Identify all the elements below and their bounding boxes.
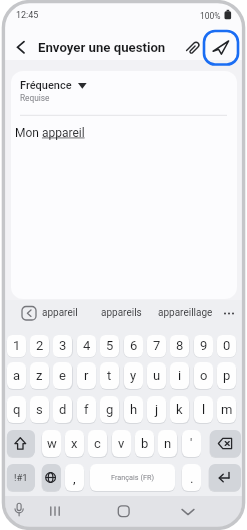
staticText: 4 (83, 338, 91, 353)
button[interactable]: d (53, 396, 72, 423)
button[interactable] (182, 36, 205, 59)
staticText: z (36, 368, 43, 383)
button[interactable] (18, 303, 40, 323)
button[interactable] (16, 76, 92, 104)
button[interactable]: i (170, 362, 189, 389)
button[interactable]: e (53, 362, 72, 389)
button[interactable]: appareillage (150, 305, 220, 321)
button[interactable]: r (77, 362, 96, 389)
button[interactable]: !#1 (7, 464, 35, 491)
button[interactable]: . (182, 464, 201, 491)
staticText: appareils (101, 307, 142, 319)
button[interactable] (210, 430, 241, 457)
button[interactable]: 3 (53, 335, 72, 357)
staticText: o (200, 368, 208, 383)
staticText: Fréquence (20, 79, 72, 92)
button[interactable] (10, 501, 28, 519)
button[interactable]: n (158, 430, 177, 457)
button[interactable]: q (7, 396, 26, 423)
button[interactable]: y (124, 362, 143, 389)
button[interactable] (46, 501, 64, 519)
button[interactable]: 7 (147, 335, 166, 357)
button[interactable]: u (147, 362, 166, 389)
staticText: g (106, 402, 114, 417)
staticText: h (130, 402, 138, 417)
button[interactable]: v (112, 430, 131, 457)
staticText: v (118, 436, 125, 451)
button[interactable]: appareils (86, 305, 156, 321)
button[interactable]: appareil (25, 305, 94, 321)
button[interactable]: ' (182, 430, 201, 457)
staticText: c (94, 436, 101, 451)
staticText: , (73, 470, 76, 486)
staticText: 5 (106, 338, 114, 353)
button[interactable]: Français (FR) (90, 464, 175, 491)
button[interactable]: c (88, 430, 107, 457)
button[interactable]: o (194, 362, 213, 389)
button[interactable]: 2 (30, 335, 49, 357)
button[interactable]: z (30, 362, 49, 389)
staticText: u (153, 368, 161, 383)
button[interactable] (42, 464, 61, 491)
staticText: 0 (223, 338, 231, 353)
button[interactable]: p (217, 362, 236, 389)
button[interactable]: s (30, 396, 49, 423)
button[interactable] (209, 464, 241, 491)
staticText: ' (190, 436, 193, 451)
staticText: Envoyer une question (38, 40, 166, 55)
button[interactable]: , (65, 464, 84, 491)
button[interactable]: k (170, 396, 189, 423)
staticText: w (47, 436, 57, 451)
staticText: Requise (20, 93, 50, 103)
staticText: i (178, 368, 182, 383)
staticText: !#1 (14, 472, 28, 483)
staticText: r (84, 368, 89, 383)
button[interactable] (204, 31, 238, 65)
button[interactable]: g (100, 396, 119, 423)
button[interactable] (7, 430, 35, 457)
staticText: 2 (36, 338, 44, 353)
staticText: 1 (13, 338, 21, 353)
button[interactable] (114, 501, 133, 520)
staticText: Mon appareil (15, 126, 85, 140)
button[interactable] (220, 303, 240, 323)
button[interactable]: 5 (100, 335, 119, 357)
button[interactable]: w (42, 430, 61, 457)
button[interactable]: x (65, 430, 84, 457)
button[interactable]: 6 (124, 335, 143, 357)
staticText: l (202, 402, 206, 417)
staticText: a (13, 368, 21, 383)
button[interactable]: j (147, 396, 166, 423)
staticText: d (59, 402, 67, 417)
button[interactable]: b (135, 430, 154, 457)
button[interactable]: a (7, 362, 26, 389)
button[interactable]: t (100, 362, 119, 389)
staticText: . (190, 470, 194, 486)
staticText: x (71, 436, 78, 451)
staticText: k (176, 402, 183, 417)
button[interactable]: h (124, 396, 143, 423)
staticText: appareil (42, 307, 78, 319)
button[interactable]: 9 (194, 335, 213, 357)
staticText: y (130, 368, 137, 383)
staticText: m (221, 402, 233, 417)
staticText: 12:45 (16, 10, 39, 21)
button[interactable]: 1 (7, 335, 26, 357)
button[interactable]: m (217, 396, 236, 423)
staticText: 7 (153, 338, 161, 353)
button[interactable]: l (194, 396, 213, 423)
staticText: 9 (200, 338, 208, 353)
staticText: appareillage (158, 307, 213, 319)
button[interactable]: 0 (217, 335, 236, 357)
button[interactable] (10, 36, 32, 58)
staticText: Français (FR) (111, 473, 154, 482)
staticText: 8 (176, 338, 184, 353)
button[interactable]: 4 (77, 335, 96, 357)
staticText: 3 (59, 338, 67, 353)
staticText: j (155, 402, 159, 417)
staticText: e (59, 368, 66, 383)
staticText: s (36, 402, 43, 417)
button[interactable]: 8 (170, 335, 189, 357)
button[interactable]: f (77, 396, 96, 423)
button[interactable] (179, 501, 197, 519)
